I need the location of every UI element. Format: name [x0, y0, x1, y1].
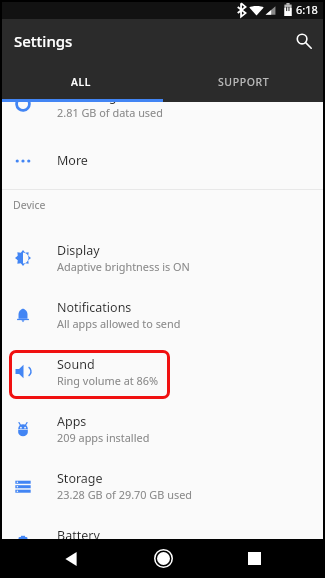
staticText: Apps: [57, 413, 87, 430]
button[interactable]: Recents: [234, 539, 274, 578]
staticText: 6:18: [296, 2, 318, 17]
staticText: Notifications: [57, 299, 132, 316]
staticText: Storage: [57, 470, 103, 487]
staticText: Sound: [57, 356, 95, 373]
staticText: 23.28 GB of 29.70 GB used: [57, 487, 192, 502]
staticText: Settings: [14, 31, 73, 51]
button[interactable]: Home: [143, 539, 183, 578]
staticText: Ring volume at 86%: [57, 373, 159, 388]
button[interactable]: Back: [51, 539, 91, 578]
button[interactable]: Notifications: [0, 286, 325, 343]
staticText: Battery: [57, 527, 100, 539]
button[interactable]: Display: [0, 229, 325, 286]
staticText: All apps allowed to send: [57, 316, 181, 331]
staticText: ALL: [71, 75, 91, 89]
button[interactable]: Battery: [0, 514, 325, 539]
button[interactable]: Apps: [0, 400, 325, 457]
staticText: Data usage: [57, 102, 124, 105]
staticText: Adaptive brightness is ON: [57, 259, 190, 274]
button[interactable]: ALL: [0, 62, 162, 102]
button[interactable]: More: [0, 132, 325, 189]
button[interactable]: SUPPORT: [162, 62, 325, 102]
staticText: 2.81 GB of data used: [57, 105, 163, 120]
button[interactable]: Storage: [0, 457, 325, 514]
staticText: Device: [13, 198, 46, 212]
button[interactable]: Search: [282, 19, 325, 62]
staticText: More: [57, 152, 88, 169]
staticText: Display: [57, 242, 100, 259]
button[interactable]: Sound: [0, 343, 325, 400]
button[interactable]: Data usage: [0, 102, 325, 132]
staticText: 209 apps installed: [57, 430, 150, 445]
staticText: SUPPORT: [218, 75, 270, 89]
